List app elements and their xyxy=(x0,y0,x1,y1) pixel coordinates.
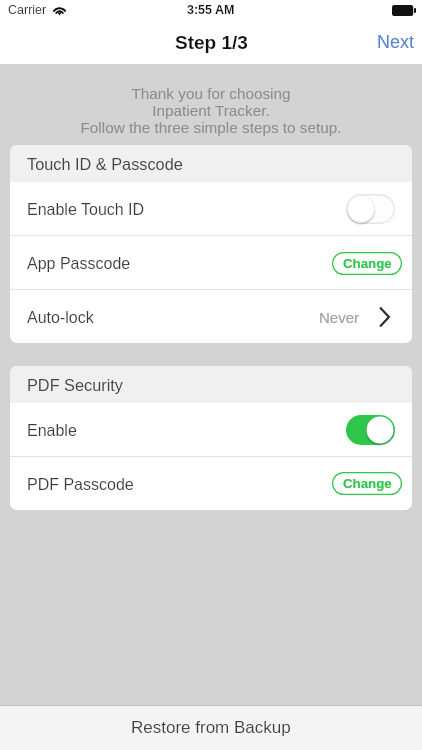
button[interactable]: Switch off xyxy=(345,193,396,225)
staticText: Next xyxy=(377,32,415,52)
staticText: Change xyxy=(343,476,392,491)
staticText: PDF Security xyxy=(27,376,123,394)
button[interactable]: Change xyxy=(332,472,402,495)
button[interactable]: Next xyxy=(370,22,422,62)
button[interactable]: Enable xyxy=(10,403,412,457)
button[interactable]: Restore from Backup xyxy=(0,705,422,750)
staticText: Restore from Backup xyxy=(131,718,291,737)
button[interactable]: PDF Passcode xyxy=(10,457,412,510)
button[interactable]: Enable Touch ID xyxy=(10,182,412,236)
staticText: Auto-lock xyxy=(27,309,94,327)
staticText: Thank you for choosing Inpatient Tracker… xyxy=(0,85,422,136)
other: Open Auto-lock xyxy=(379,307,390,327)
staticText: Enable xyxy=(27,422,77,440)
staticText: 3:55 AM xyxy=(187,3,235,17)
button[interactable]: Auto-lock xyxy=(10,290,412,343)
staticText: Enable Touch ID xyxy=(27,201,145,219)
staticText: App Passcode xyxy=(27,255,131,273)
button[interactable]: App Passcode xyxy=(10,236,412,290)
staticText: Step 1/3 xyxy=(175,32,248,53)
button[interactable]: Switch on xyxy=(345,414,396,446)
staticText: Never xyxy=(319,309,360,326)
other: Wi-Fi xyxy=(53,5,66,16)
staticText: Change xyxy=(343,256,392,271)
staticText: Touch ID & Passcode xyxy=(27,155,183,173)
staticText: PDF Passcode xyxy=(27,476,134,494)
staticText: Carrier xyxy=(8,3,47,17)
button[interactable]: Change xyxy=(332,252,402,275)
other: Battery xyxy=(392,5,416,16)
